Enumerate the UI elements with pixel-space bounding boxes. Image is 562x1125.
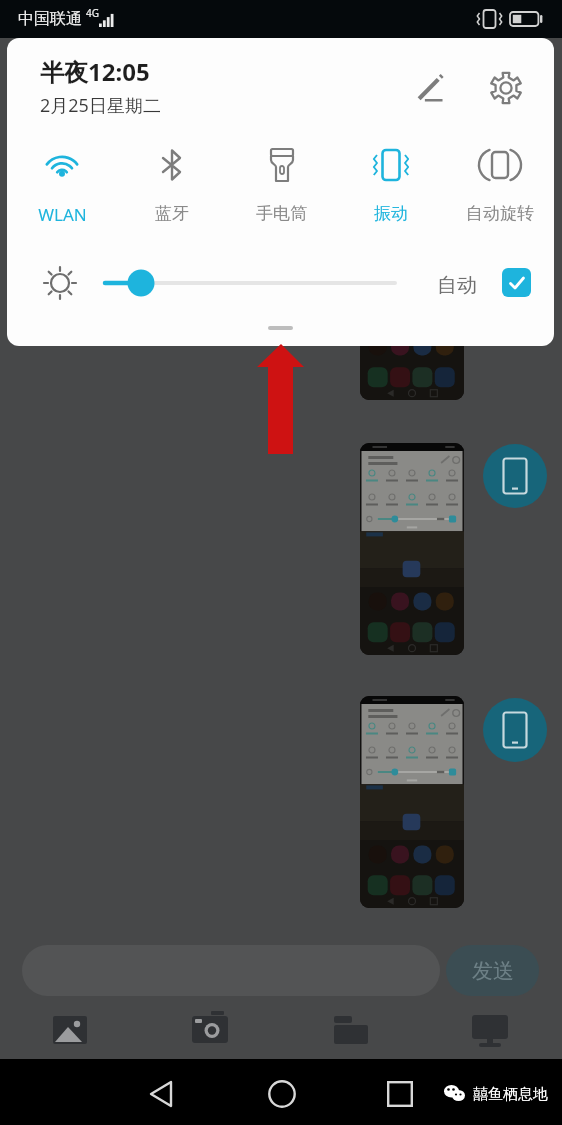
staticText: 手电筒 <box>256 203 307 224</box>
staticText: 中国联通 <box>18 9 82 29</box>
button[interactable]: Screenshot <box>360 188 464 400</box>
button[interactable]: Gallery <box>38 1004 102 1056</box>
button[interactable]: 手电筒 <box>227 140 336 226</box>
button[interactable]: Screenshot <box>360 696 464 908</box>
staticText: 蓝牙 <box>155 203 189 224</box>
button[interactable]: Contact avatar <box>483 698 547 762</box>
button[interactable]: WLAN <box>7 140 117 228</box>
staticText: 发送 <box>472 958 514 984</box>
staticText: 4G <box>86 6 99 20</box>
button[interactable]: 发送 <box>446 945 539 996</box>
button[interactable]: Auto brightness <box>502 268 531 297</box>
button[interactable]: Screenshot <box>360 443 464 655</box>
staticText: 振动 <box>374 203 408 224</box>
staticText: 囍鱼栖息地 <box>473 1085 548 1104</box>
button[interactable]: Recents <box>374 1068 426 1120</box>
staticText: WLAN <box>38 203 87 226</box>
button[interactable]: 蓝牙 <box>117 140 227 226</box>
button[interactable]: Contact avatar <box>483 444 547 508</box>
staticText: 2月25日星期二 <box>40 93 161 118</box>
button[interactable]: Brightness slider <box>98 261 396 305</box>
staticText: 自动旋转 <box>466 203 534 224</box>
button[interactable]: 振动 <box>336 140 445 226</box>
button[interactable]: Home <box>256 1068 308 1120</box>
button[interactable]: Camera <box>178 1004 242 1056</box>
button[interactable]: Edit <box>403 60 459 116</box>
button[interactable]: Files <box>319 1004 383 1056</box>
button[interactable]: Settings <box>478 60 534 116</box>
button[interactable]: Back <box>135 1068 187 1120</box>
button[interactable]: Brightness <box>38 261 82 305</box>
staticText: 自动 <box>437 273 477 298</box>
button[interactable]: 自动旋转 <box>445 140 554 226</box>
button[interactable]: Screen <box>458 1004 522 1056</box>
staticText: 半夜12:05 <box>40 55 150 88</box>
